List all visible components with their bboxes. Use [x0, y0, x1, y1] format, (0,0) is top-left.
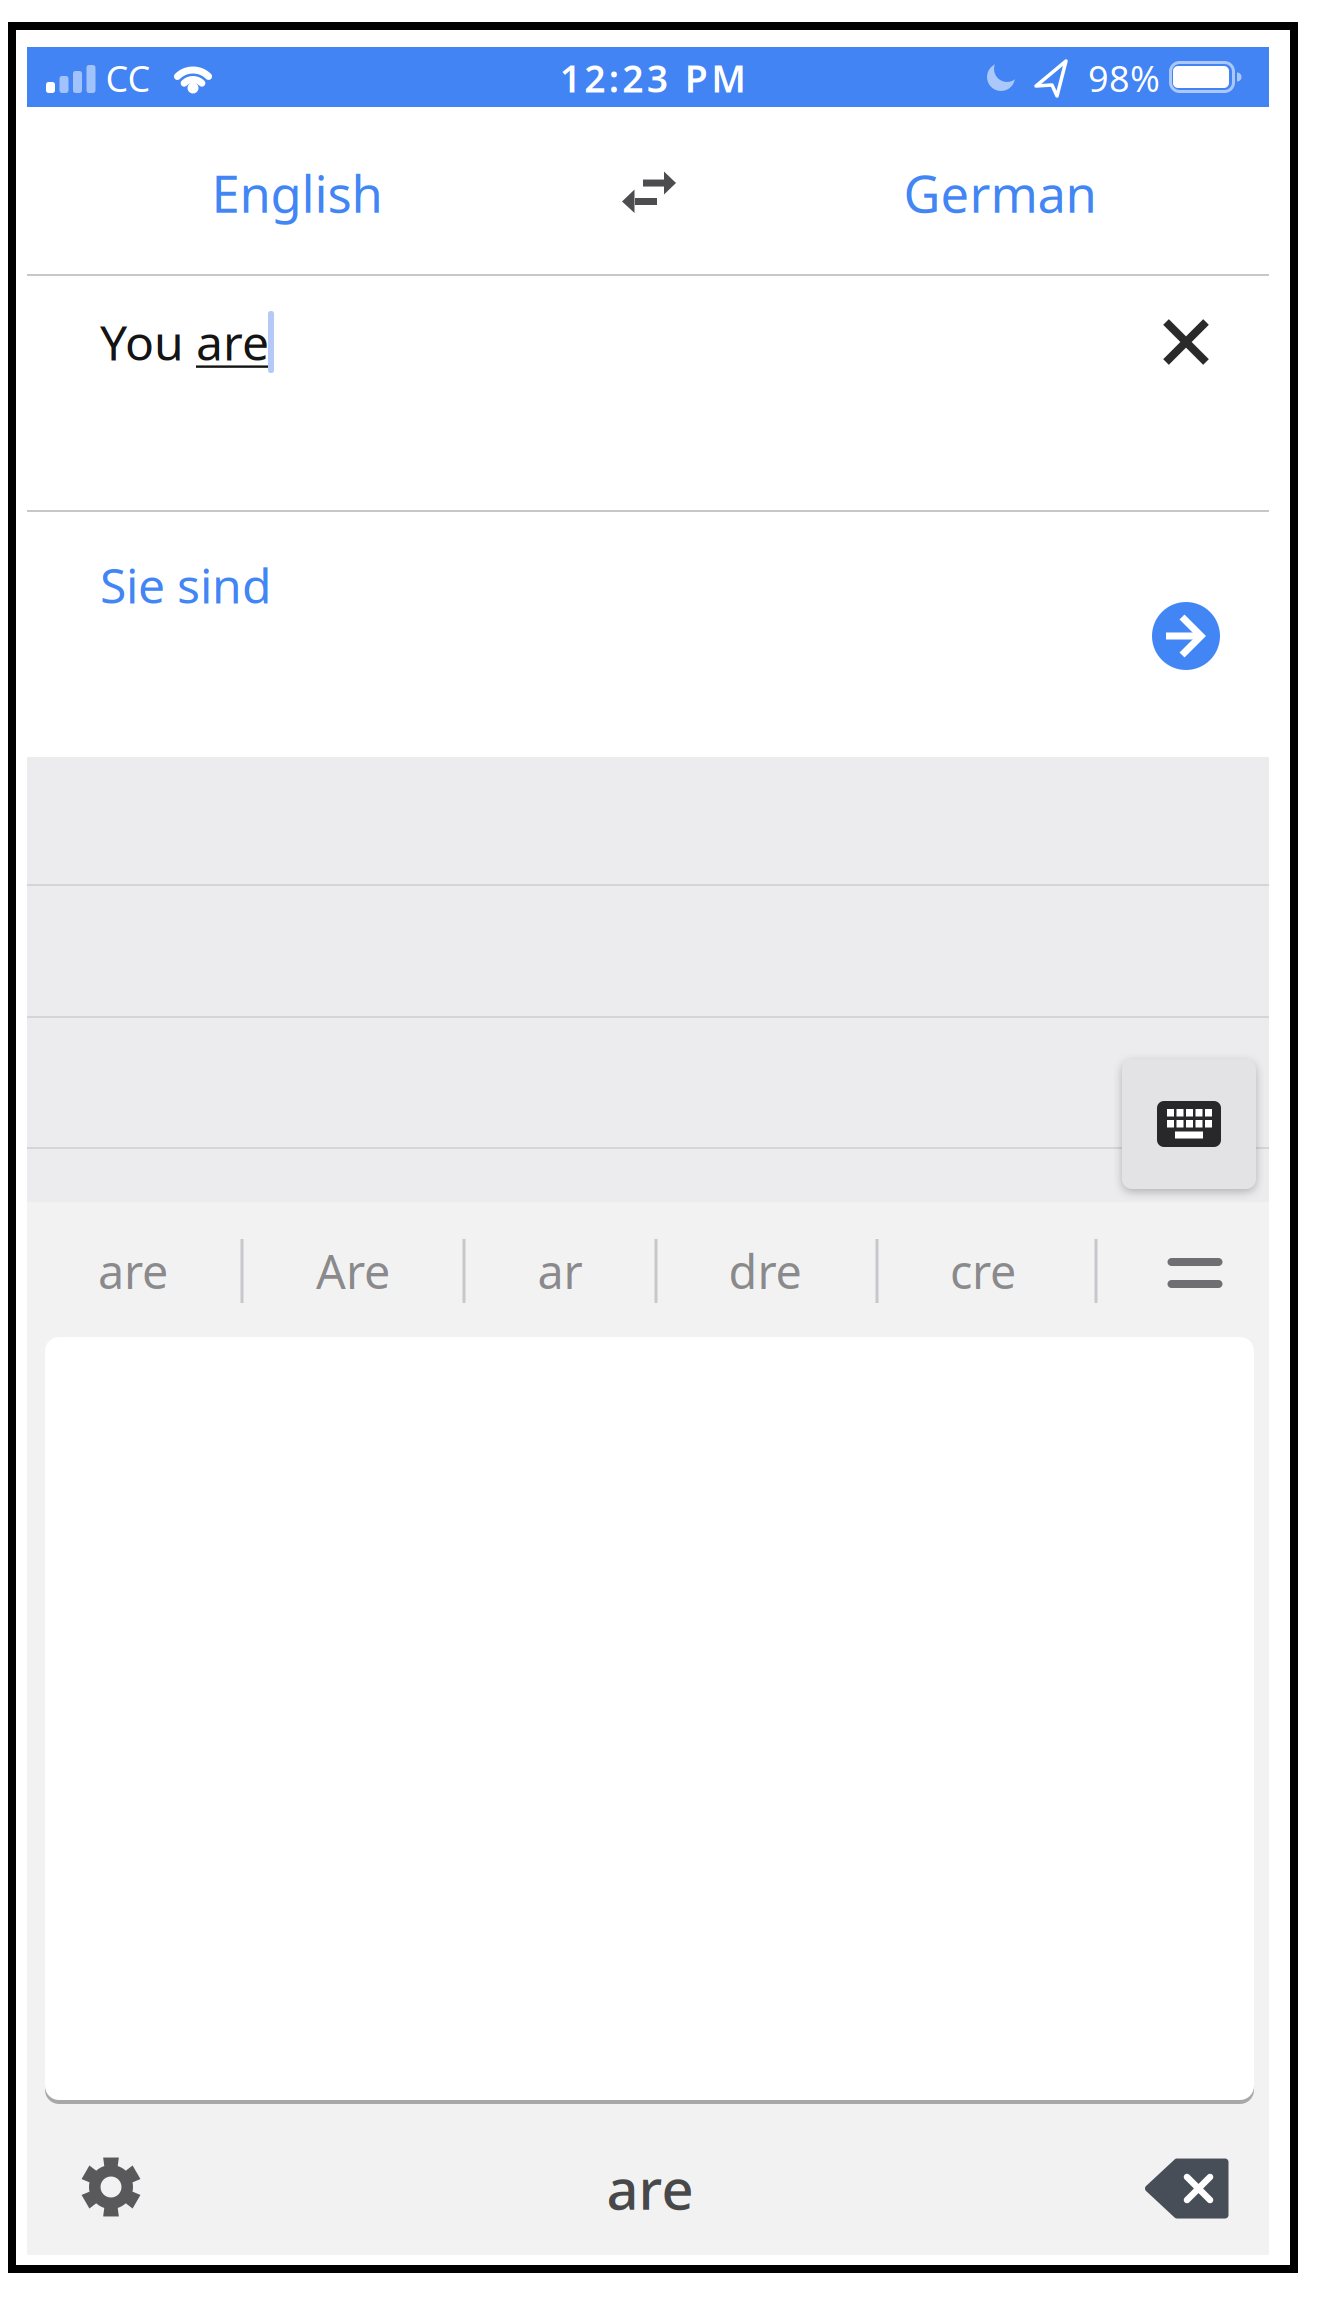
button[interactable]: Settings	[66, 2142, 156, 2232]
staticText: German	[903, 159, 1096, 227]
staticText: 12:23 PM	[560, 53, 746, 103]
staticText: Sie sind	[100, 553, 272, 617]
button[interactable]: German	[810, 133, 1190, 253]
staticText: You are	[100, 310, 269, 374]
button[interactable]: Delete	[1131, 2144, 1241, 2234]
button[interactable]: are	[48, 1221, 218, 1321]
button[interactable]: Clear text	[1136, 292, 1236, 392]
staticText: CC	[105, 54, 150, 102]
staticText: are	[606, 2151, 693, 2225]
staticText: English	[211, 159, 382, 227]
staticText: Are	[316, 1240, 390, 1302]
button[interactable]: Are	[268, 1221, 438, 1321]
button[interactable]: Open translation	[1152, 602, 1220, 670]
button[interactable]: ar	[475, 1221, 645, 1321]
staticText: are	[98, 1240, 168, 1302]
button[interactable]: cre	[898, 1221, 1068, 1321]
button[interactable]: Switch to keyboard	[1122, 1059, 1256, 1189]
staticText: dre	[728, 1240, 801, 1302]
staticText: cre	[950, 1240, 1016, 1302]
button[interactable]: English	[107, 133, 487, 253]
button[interactable]: dre	[680, 1221, 850, 1321]
button[interactable]: More candidates	[1165, 1248, 1225, 1298]
staticText: 98%	[1088, 54, 1160, 102]
button[interactable]: Swap languages	[588, 142, 708, 242]
staticText: ar	[537, 1240, 582, 1302]
